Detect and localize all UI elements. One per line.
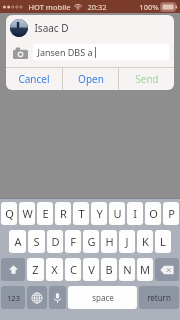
button[interactable]: E <box>37 202 53 225</box>
button[interactable]: Open <box>63 68 118 90</box>
button[interactable]: Y <box>91 202 107 225</box>
staticText: 123 <box>7 293 20 303</box>
staticText: S <box>33 234 40 249</box>
staticText: HOT mobile <box>28 2 71 12</box>
staticText: H <box>105 234 114 249</box>
staticText: T <box>78 206 85 221</box>
staticText: Open <box>78 72 104 86</box>
button[interactable]: Cancel <box>6 68 62 90</box>
staticText: W <box>22 206 33 221</box>
staticText: O <box>149 206 158 221</box>
staticText: return <box>147 292 171 303</box>
staticText: P <box>168 206 175 221</box>
button[interactable]: Dictate <box>49 286 66 309</box>
staticText: Send <box>135 72 159 86</box>
button[interactable]: B <box>101 258 117 281</box>
staticText: N <box>123 262 132 277</box>
staticText: A <box>14 234 22 249</box>
button[interactable]: return <box>139 286 179 309</box>
button[interactable]: Backspace <box>155 258 179 281</box>
button[interactable]: F <box>65 230 81 253</box>
button[interactable]: A <box>9 230 26 253</box>
staticText: Y <box>96 206 103 221</box>
button[interactable]: I <box>127 202 143 225</box>
staticText: E <box>42 206 49 221</box>
staticText: F <box>70 234 76 249</box>
button[interactable]: N <box>119 258 135 281</box>
staticText: M <box>140 262 150 277</box>
staticText: Z <box>32 262 39 277</box>
staticText: G <box>87 234 96 249</box>
button[interactable]: K <box>137 230 153 253</box>
button[interactable]: X <box>46 258 63 281</box>
button[interactable]: Send <box>119 68 174 90</box>
button[interactable]: 123 <box>1 286 25 309</box>
staticText: Jansen DBS a <box>37 46 93 58</box>
button[interactable]: S <box>28 230 45 253</box>
button[interactable]: P <box>163 202 179 225</box>
button[interactable]: W <box>19 202 35 225</box>
staticText: B <box>105 262 113 277</box>
staticText: K <box>142 234 149 249</box>
staticText: C <box>70 262 77 277</box>
staticText: J <box>125 234 129 249</box>
button[interactable] <box>10 19 28 37</box>
button[interactable]: U <box>109 202 125 225</box>
staticText: space <box>92 292 114 303</box>
button[interactable]: M <box>137 258 153 281</box>
button[interactable]: L <box>155 230 171 253</box>
button[interactable]: G <box>83 230 99 253</box>
staticText: D <box>51 234 60 249</box>
button[interactable]: V <box>83 258 99 281</box>
staticText: V <box>88 262 95 277</box>
button[interactable]: Z <box>27 258 44 281</box>
button[interactable]: Q <box>1 202 17 225</box>
staticText: Cancel <box>18 72 50 86</box>
button[interactable]: R <box>55 202 71 225</box>
button[interactable]: Change keyboard <box>27 286 47 309</box>
staticText: 20:32 <box>87 2 107 12</box>
button[interactable]: J <box>119 230 135 253</box>
staticText: 100% <box>139 2 159 12</box>
button[interactable]: space <box>68 286 137 309</box>
button[interactable]: Jansen DBS a <box>33 44 169 60</box>
staticText: L <box>160 234 166 249</box>
button[interactable]: T <box>73 202 89 225</box>
button[interactable]: H <box>101 230 117 253</box>
button[interactable]: D <box>47 230 63 253</box>
staticText: R <box>60 206 67 221</box>
staticText: I <box>133 206 137 221</box>
button[interactable]: Shift <box>1 258 25 281</box>
staticText: X <box>51 262 58 277</box>
staticText: Isaac D <box>34 21 69 35</box>
button[interactable]: C <box>65 258 81 281</box>
button[interactable]: O <box>145 202 161 225</box>
staticText: U <box>113 206 122 221</box>
button[interactable]: Attach photo <box>11 45 29 60</box>
staticText: Q <box>5 206 14 221</box>
